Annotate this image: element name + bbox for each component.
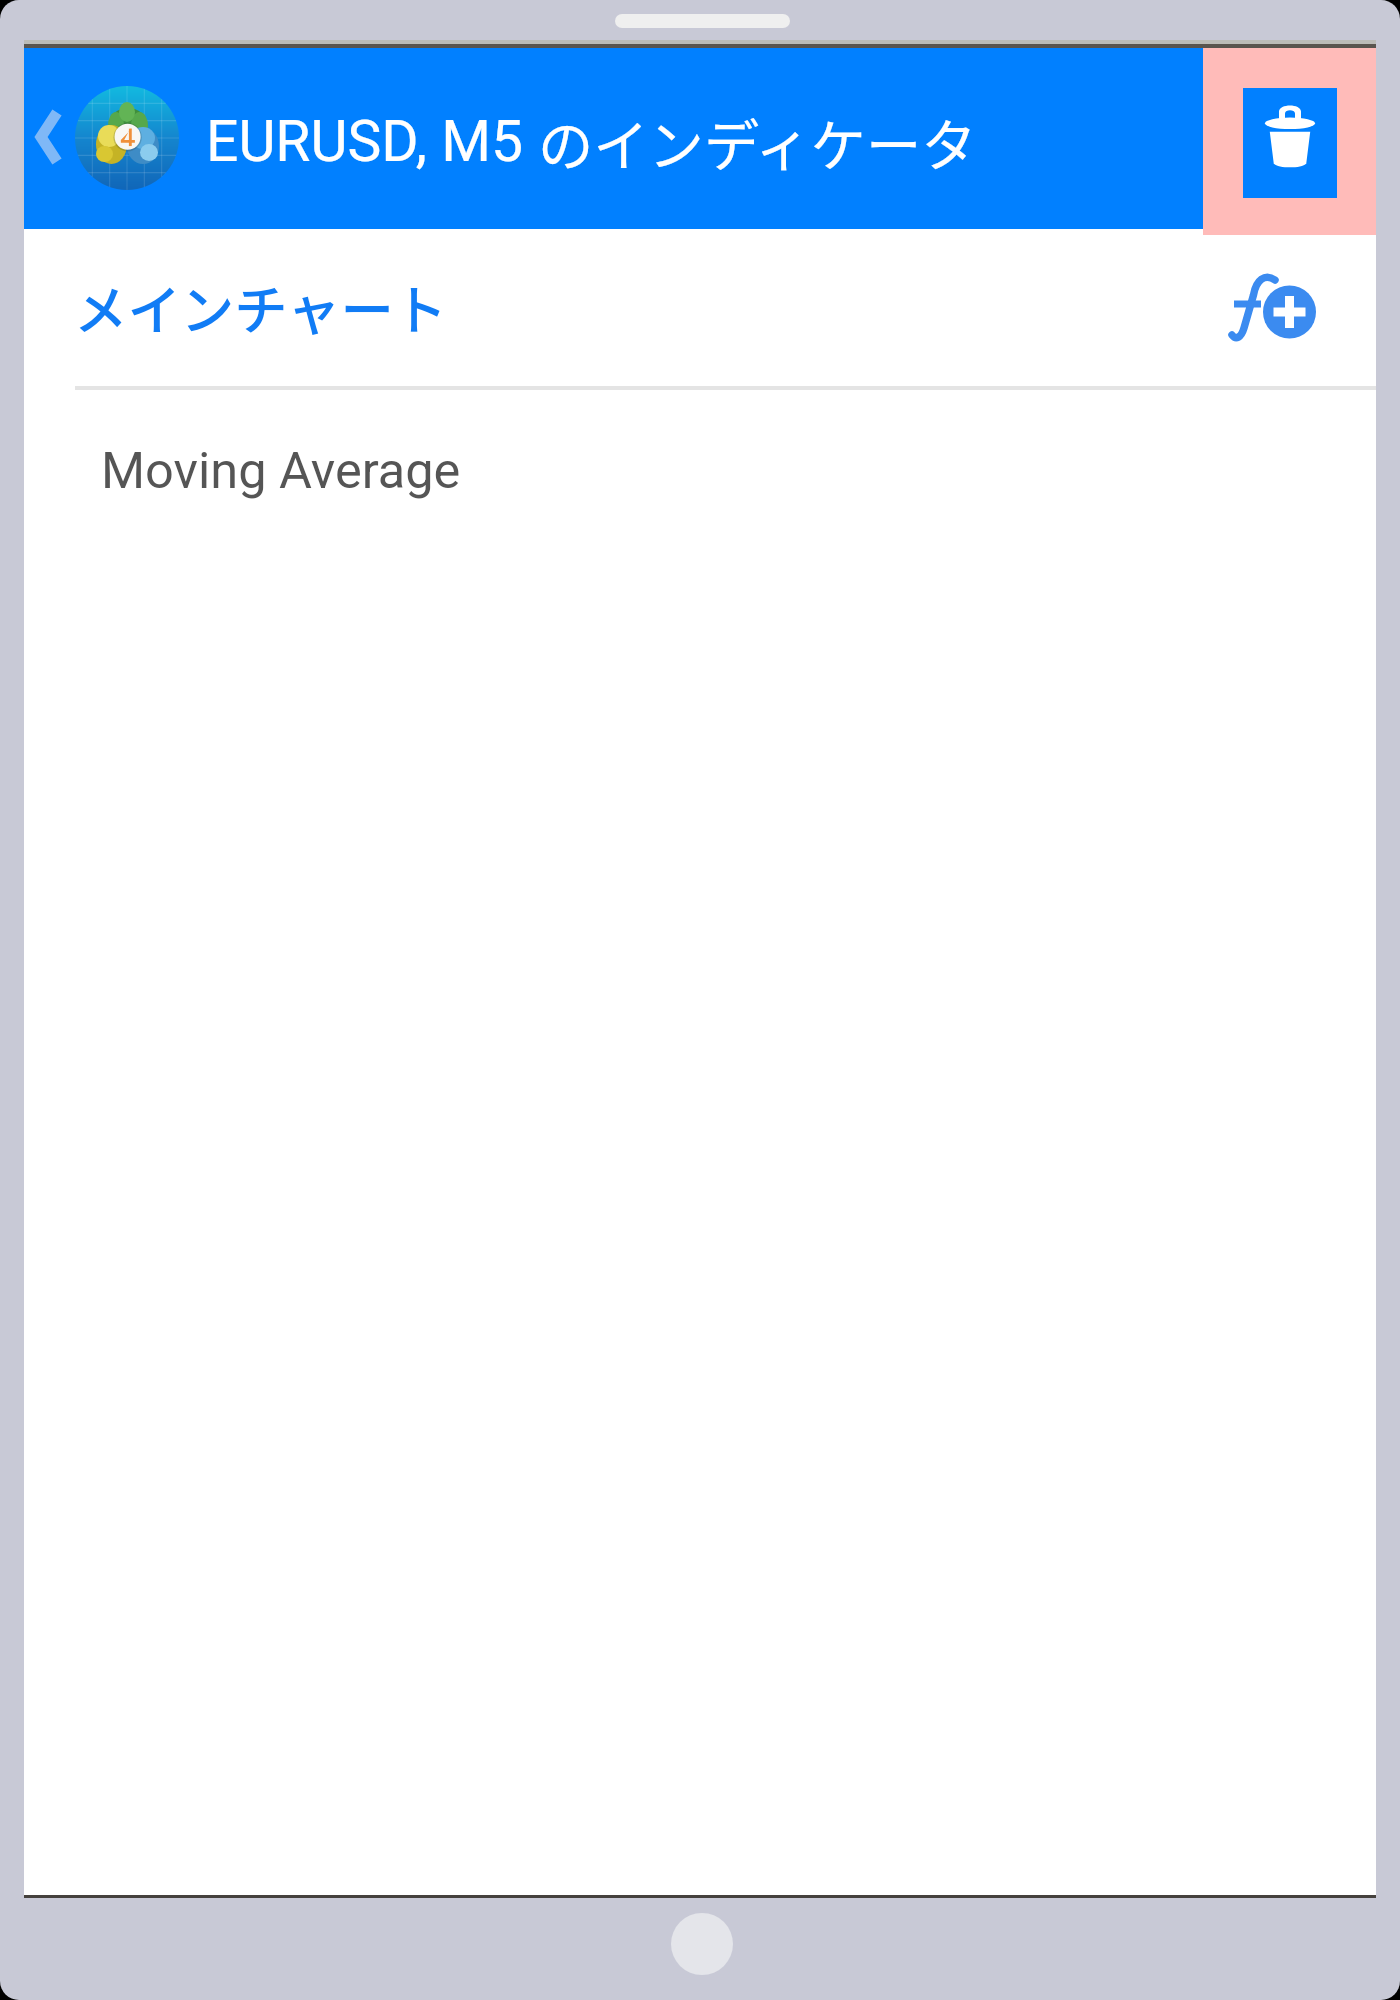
- staticText: EURUSD, M5: [206, 108, 538, 175]
- staticText: メインチャート: [74, 268, 448, 345]
- button[interactable]: Home: [671, 1913, 733, 1975]
- staticText: のインディケータ: [538, 102, 977, 182]
- button[interactable]: メインチャート: [24, 229, 1376, 386]
- button[interactable]: Add indicator: [1200, 245, 1346, 371]
- button[interactable]: Delete: [1243, 88, 1337, 198]
- button[interactable]: Moving Average: [24, 390, 1376, 550]
- button[interactable]: Back: [24, 48, 72, 229]
- staticText: Moving Average: [101, 441, 461, 500]
